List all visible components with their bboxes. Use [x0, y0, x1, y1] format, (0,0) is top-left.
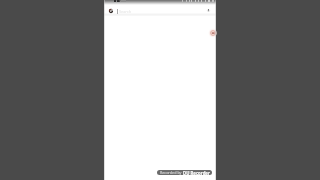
- staticText: DU Recorder: [183, 170, 210, 175]
- button[interactable]: Notification badge: [208, 28, 218, 38]
- staticText: Recorded by: [160, 170, 183, 175]
- button[interactable]: Recorded by: [157, 170, 212, 175]
- staticText: Search: [119, 9, 132, 14]
- button[interactable]: Google search engine: [104, 5, 216, 13]
- button[interactable]: Google search engine: [109, 9, 113, 13]
- button[interactable]: Voice search: [206, 8, 211, 13]
